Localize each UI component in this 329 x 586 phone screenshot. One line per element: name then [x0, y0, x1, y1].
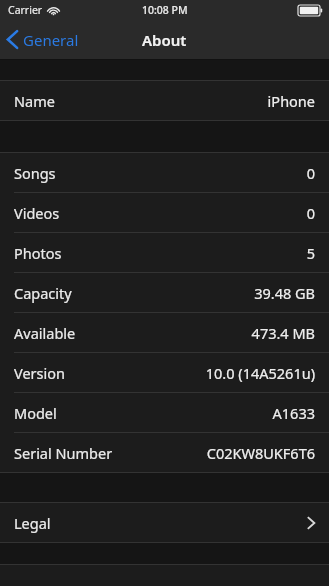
staticText: Photos	[14, 243, 62, 263]
staticText: 473.4 MB	[251, 323, 315, 343]
staticText: Videos	[14, 203, 60, 223]
staticText: Carrier	[8, 3, 43, 17]
staticText: Model	[14, 403, 57, 423]
staticText: 5	[306, 243, 315, 263]
button[interactable]: Version	[0, 353, 329, 392]
staticText: C02KW8UKF6T6	[206, 443, 315, 463]
button[interactable]: Legal	[0, 503, 329, 542]
button[interactable]: Available	[0, 313, 329, 352]
staticText: Name	[14, 91, 55, 111]
staticText: 10.0 (14A5261u)	[205, 363, 315, 383]
staticText: Songs	[14, 163, 56, 183]
staticText: About	[142, 30, 187, 50]
staticText: 0	[306, 203, 315, 223]
button[interactable]: General	[0, 20, 87, 59]
staticText: Version	[14, 363, 65, 383]
button[interactable]: Capacity	[0, 273, 329, 312]
staticText: 39.48 GB	[254, 283, 315, 303]
button[interactable]: Model	[0, 393, 329, 432]
staticText: 0	[306, 163, 315, 183]
staticText: General	[23, 30, 79, 50]
button[interactable]: Photos	[0, 233, 329, 272]
staticText: Legal	[14, 513, 51, 533]
button[interactable]: Videos	[0, 193, 329, 232]
staticText: Capacity	[14, 283, 72, 303]
button[interactable]: Songs	[0, 153, 329, 192]
staticText: A1633	[272, 403, 315, 423]
button[interactable]: Serial Number	[0, 433, 329, 472]
staticText: Serial Number	[14, 443, 113, 463]
staticText: Available	[14, 323, 76, 343]
staticText: 10:08 PM	[142, 3, 188, 17]
button[interactable]: Name	[0, 81, 329, 120]
staticText: iPhone	[267, 91, 315, 111]
